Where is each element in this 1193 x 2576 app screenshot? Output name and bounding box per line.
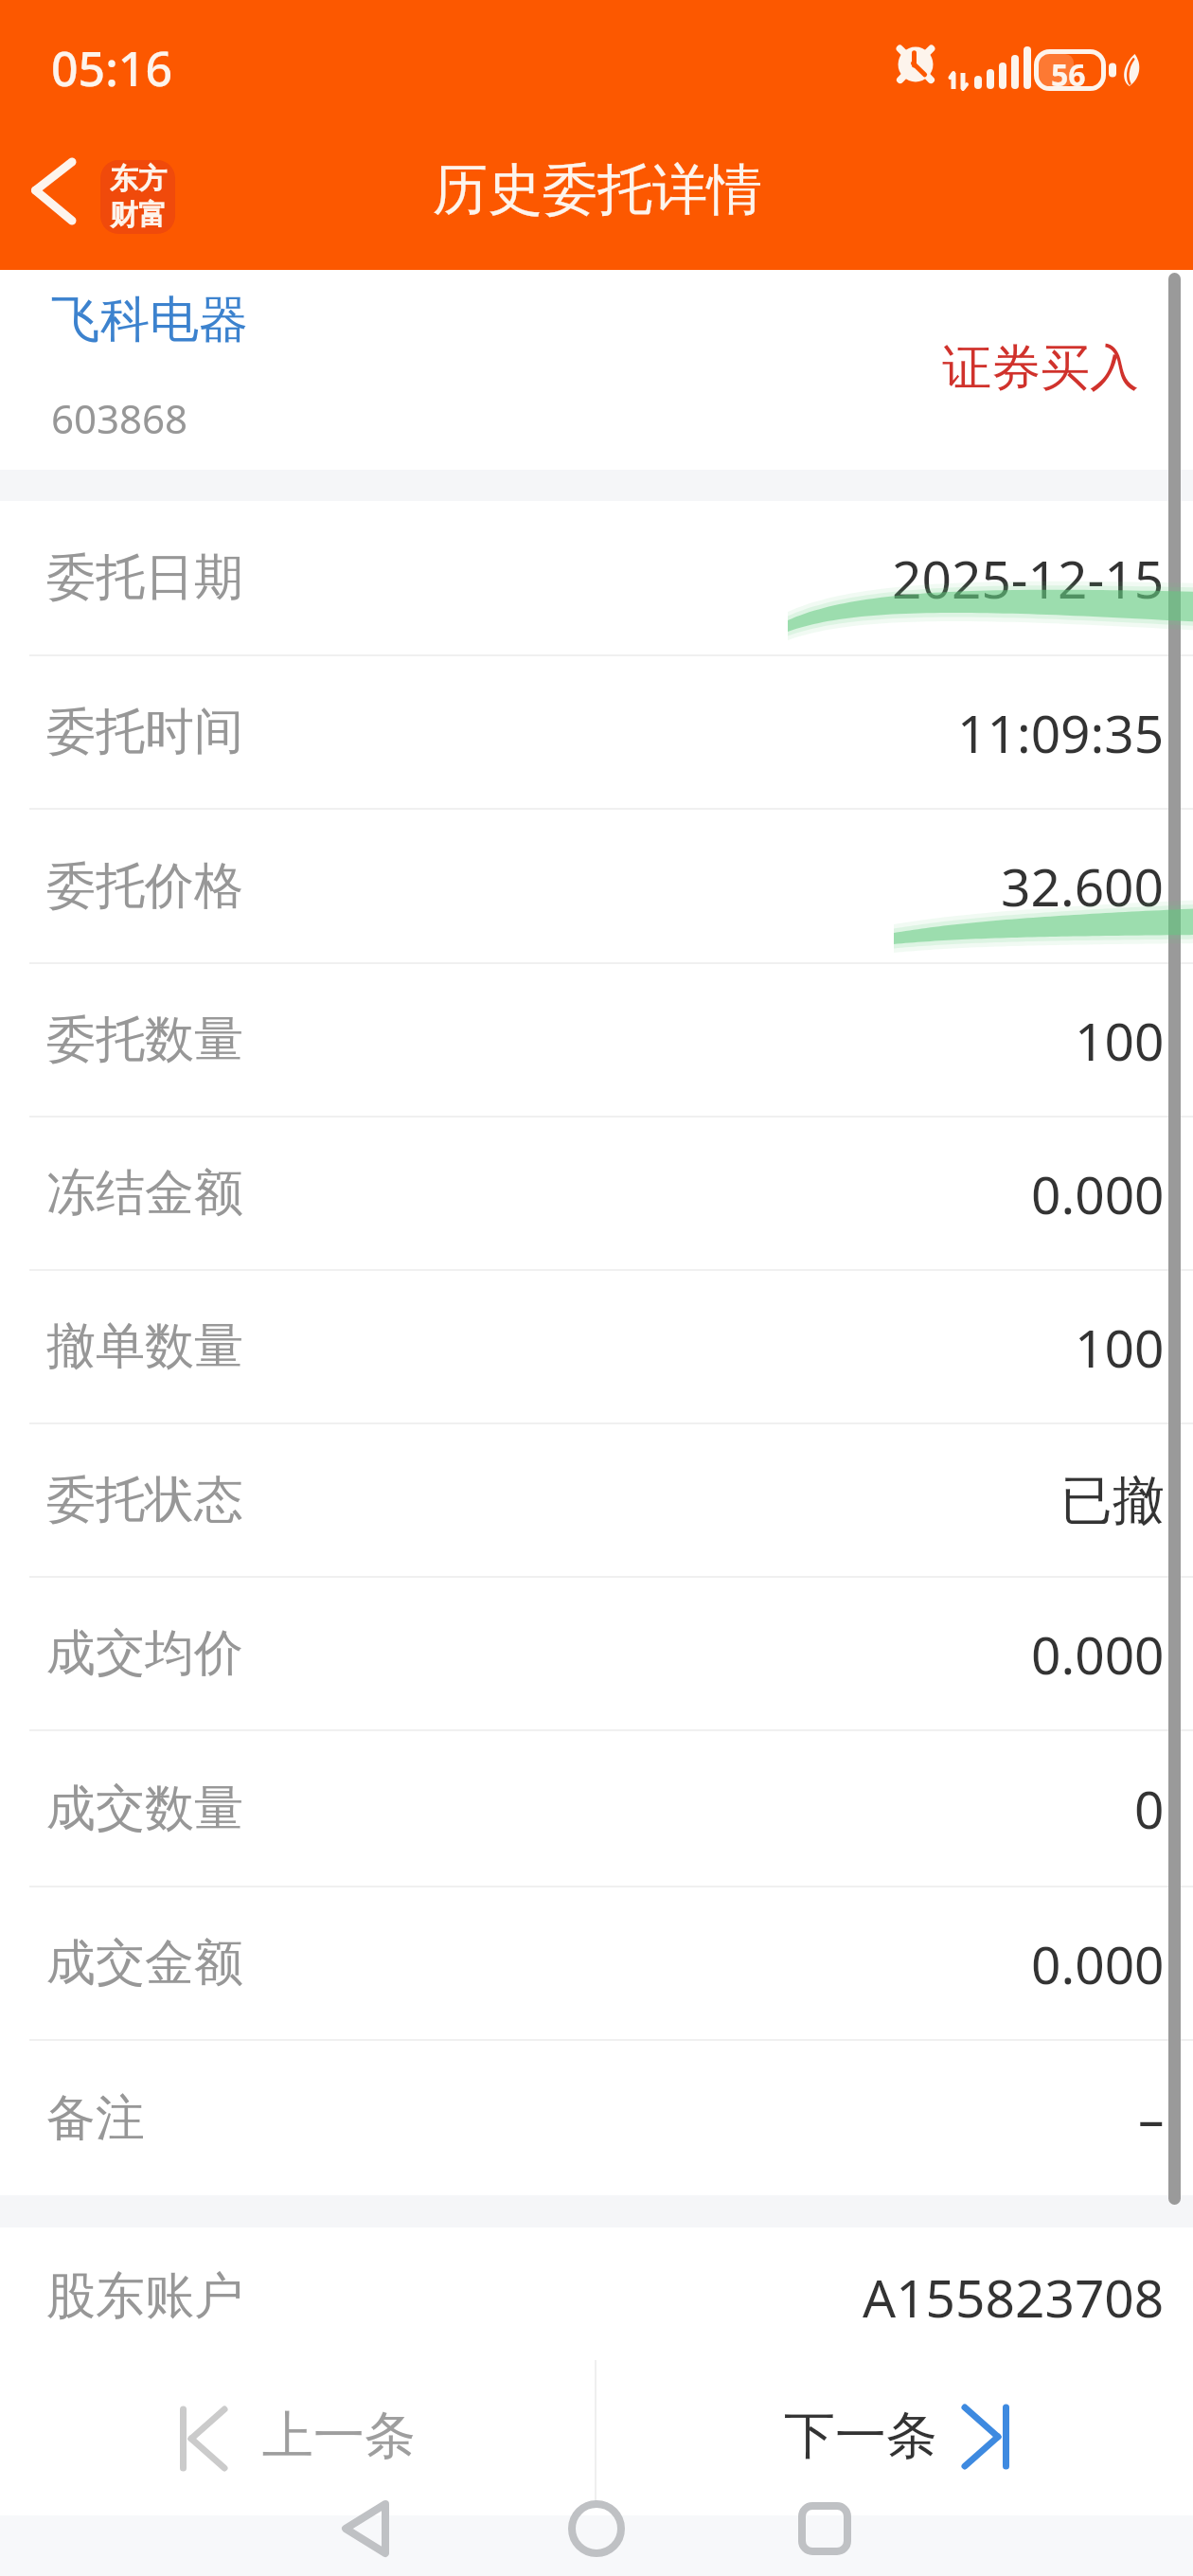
staticText: 冻结金额: [46, 1162, 243, 1225]
staticText: 下一条: [784, 2404, 937, 2468]
staticText: 委托价格: [46, 855, 243, 918]
staticText: 股东账户: [46, 2265, 243, 2328]
staticText: 东方: [110, 161, 167, 197]
staticText: 成交数量: [46, 1778, 243, 1840]
button[interactable]: 上一条: [0, 2366, 596, 2515]
button[interactable]: 委托数量: [0, 964, 1193, 1116]
staticText: 撤单数量: [46, 1315, 243, 1378]
button[interactable]: 委托时间: [0, 656, 1193, 808]
staticText: 100: [1075, 1005, 1165, 1076]
staticText: –: [1138, 2083, 1165, 2154]
staticText: 05:16: [51, 36, 172, 100]
staticText: 委托状态: [46, 1469, 243, 1531]
staticText: 0.000: [1031, 1158, 1165, 1229]
staticText: 飞科电器: [51, 289, 248, 351]
button[interactable]: 成交均价: [0, 1578, 1193, 1729]
button[interactable]: 股东账户: [0, 2227, 1193, 2366]
staticText: 成交金额: [46, 1932, 243, 1995]
button[interactable]: 撤单数量: [0, 1271, 1193, 1422]
staticText: 委托时间: [46, 701, 243, 763]
button[interactable]: 成交数量: [0, 1731, 1193, 1886]
staticText: 上一条: [262, 2404, 416, 2468]
button[interactable]: 下一条: [596, 2366, 1193, 2515]
staticText: 证券买入: [942, 337, 1139, 400]
staticText: 32.600: [1001, 850, 1165, 921]
staticText: A155823708: [863, 2262, 1165, 2333]
staticText: 已撤: [1060, 1468, 1165, 1533]
button[interactable]: 委托日期: [0, 501, 1193, 654]
staticText: 0.000: [1031, 1619, 1165, 1690]
staticText: 603868: [51, 391, 188, 445]
staticText: 成交均价: [46, 1622, 243, 1685]
staticText: 56: [1051, 54, 1086, 96]
staticText: 2025-12-15: [892, 543, 1165, 614]
staticText: 11:09:35: [957, 697, 1165, 768]
button[interactable]: 成交金额: [0, 1887, 1193, 2039]
button[interactable]: 委托价格: [0, 810, 1193, 962]
staticText: 财富: [110, 197, 167, 233]
button[interactable]: East Money logo: [100, 160, 175, 234]
staticText: 100: [1075, 1312, 1165, 1383]
button[interactable]: Back: [0, 119, 100, 270]
staticText: 历史委托详情: [433, 155, 762, 224]
button[interactable]: 备注: [0, 2041, 1193, 2195]
button[interactable]: 委托状态: [0, 1424, 1193, 1576]
staticText: 0: [1134, 1773, 1165, 1844]
staticText: 委托数量: [46, 1009, 243, 1071]
staticText: 备注: [46, 2087, 145, 2150]
staticText: 委托日期: [46, 546, 243, 609]
staticText: 0.000: [1031, 1928, 1165, 1999]
button[interactable]: 冻结金额: [0, 1118, 1193, 1269]
